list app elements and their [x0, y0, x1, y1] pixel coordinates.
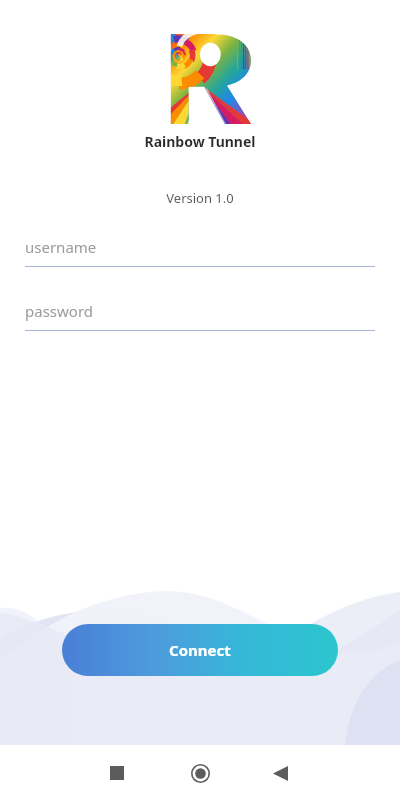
- button[interactable]: Connect: [62, 624, 338, 676]
- button[interactable]: Home: [176, 749, 224, 797]
- button[interactable]: Recent apps: [93, 749, 141, 797]
- staticText: username: [25, 237, 97, 257]
- button[interactable]: password: [25, 301, 375, 331]
- staticText: password: [25, 301, 93, 321]
- button[interactable]: Back: [256, 749, 304, 797]
- button[interactable]: username: [25, 237, 375, 267]
- staticText: Connect: [169, 640, 231, 660]
- staticText: Version 1.0: [166, 189, 234, 207]
- staticText: Rainbow Tunnel: [144, 132, 256, 151]
